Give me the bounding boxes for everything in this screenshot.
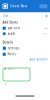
staticText: Search: [8, 32, 16, 35]
staticText: Add another: [29, 58, 47, 61]
staticText: Notes: [8, 52, 16, 56]
staticText: Scan item: [8, 26, 20, 30]
button[interactable]: Notes: [0, 51, 50, 57]
button[interactable]: Menu: [39, 4, 47, 8]
staticText: Settings: [8, 46, 19, 50]
button[interactable]: Add another: [29, 58, 47, 61]
staticText: optional: [42, 33, 47, 35]
staticText: Add Items: [3, 21, 18, 24]
button[interactable]: Search: [0, 31, 50, 36]
staticText: Draft: [3, 14, 9, 18]
button[interactable]: Scan item: [0, 25, 50, 31]
staticText: Delivered: [7, 68, 14, 70]
staticText: Details: [3, 41, 13, 44]
staticText: Total: [3, 83, 6, 85]
button[interactable]: Settings: [0, 45, 50, 51]
staticText: Create New: [10, 4, 27, 8]
button[interactable]: App icon: [3, 3, 8, 9]
